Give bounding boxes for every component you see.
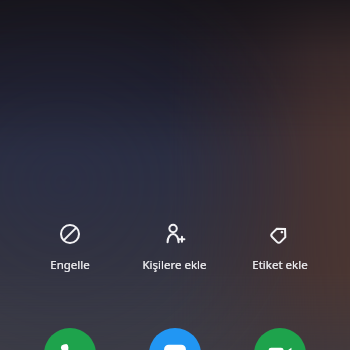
staticText: Etiket ekle [252,257,308,273]
button[interactable]: Mesaj [149,328,201,350]
button[interactable]: Engelle [18,218,122,277]
button[interactable]: Kişilere ekle [122,218,227,277]
staticText: Engelle [50,257,90,273]
button[interactable]: Etiket ekle [227,218,332,277]
button[interactable]: Ara [44,328,96,350]
staticText: Kişilere ekle [142,257,207,273]
button[interactable]: Görüntülü arama [254,328,306,350]
